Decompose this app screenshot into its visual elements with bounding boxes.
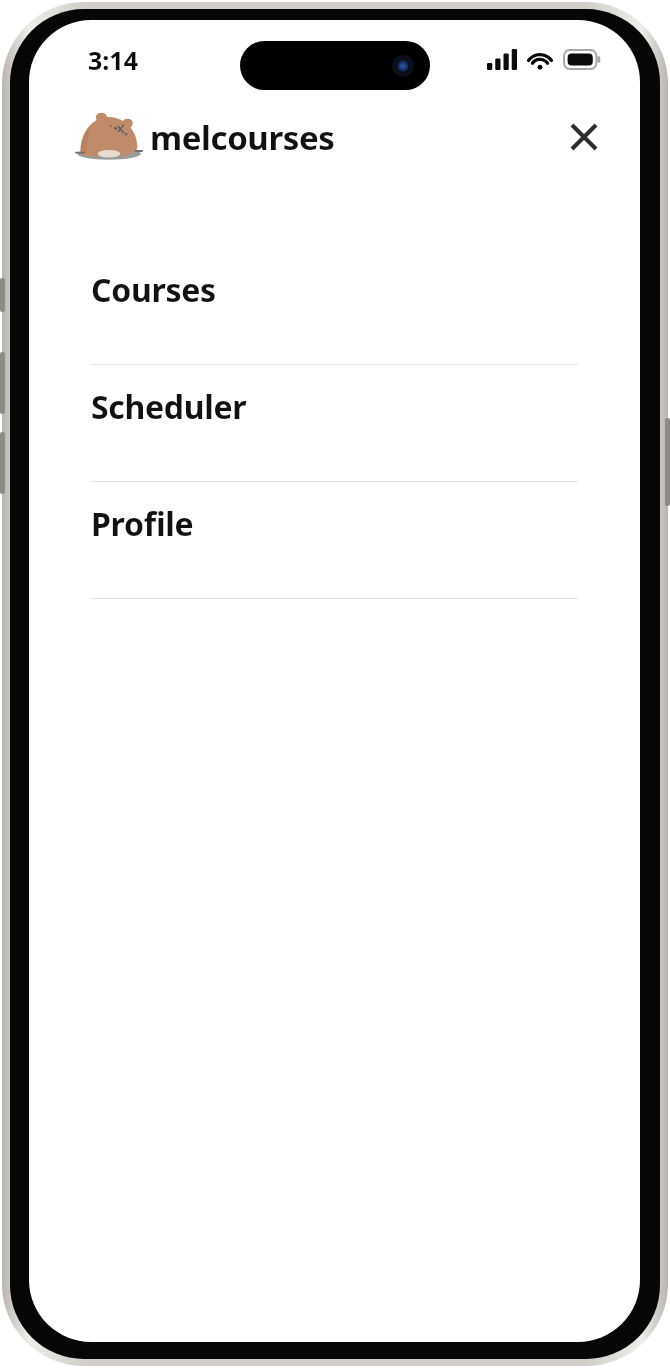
button[interactable]: Close	[558, 111, 610, 163]
button[interactable]: Scheduler	[29, 365, 640, 482]
staticText: Profile	[91, 502, 194, 546]
staticText: Scheduler	[91, 385, 247, 429]
staticText: Courses	[91, 268, 216, 312]
staticText: melcourses	[150, 115, 335, 160]
staticText: 3:14	[88, 43, 138, 77]
button[interactable]: Courses	[29, 248, 640, 365]
button[interactable]: Profile	[29, 482, 640, 599]
